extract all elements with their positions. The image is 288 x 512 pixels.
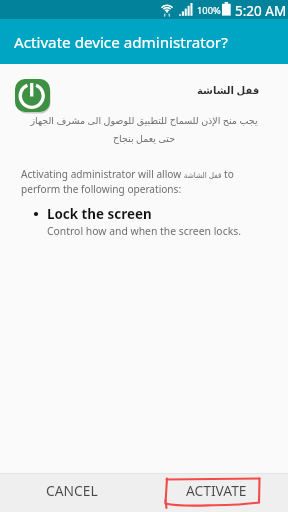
- staticText: قفل الشاشة: [197, 83, 260, 97]
- staticText: Control how and when the screen locks.: [47, 224, 241, 238]
- staticText: 5:20 AM: [235, 2, 287, 20]
- staticText: Activating administrator will allow قفل …: [21, 167, 266, 196]
- staticText: يجب منح الإذن للسماح للتطبيق للوصول الى …: [16, 114, 272, 145]
- staticText: CANCEL: [46, 481, 98, 500]
- staticText: Activate device administrator?: [14, 32, 228, 53]
- staticText: 100%: [197, 4, 221, 17]
- staticText: Lock the screen: [47, 205, 152, 223]
- button[interactable]: ACTIVATE: [144, 474, 288, 512]
- button[interactable]: CANCEL: [0, 474, 144, 512]
- staticText: ACTIVATE: [186, 481, 247, 500]
